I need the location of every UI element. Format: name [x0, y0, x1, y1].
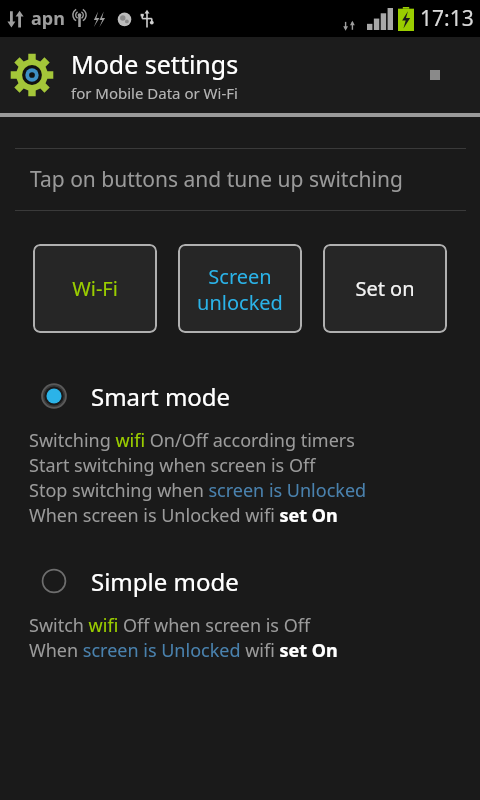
staticText: for Mobile Data or Wi-Fi: [71, 83, 238, 103]
staticText: Wi-Fi: [72, 275, 118, 302]
staticText: Smart mode: [91, 380, 231, 413]
staticText: 17:13: [420, 4, 474, 33]
staticText: Simple mode: [91, 565, 239, 598]
staticText: apn: [31, 6, 65, 31]
staticText: Set on: [355, 275, 415, 302]
staticText: Stop switching when screen is Unlocked: [29, 478, 367, 503]
button[interactable]: Simple mode: [0, 561, 480, 601]
staticText: Screen unlocked: [197, 263, 283, 315]
staticText: Switching wifi On/Off according timers: [29, 428, 355, 453]
button[interactable]: Set on: [323, 244, 447, 333]
staticText: When screen is Unlocked wifi set On: [29, 503, 338, 528]
button[interactable]: Screen unlocked: [178, 244, 302, 333]
button[interactable]: Smart mode: [0, 376, 480, 416]
staticText: Start switching when screen is Off: [29, 453, 316, 478]
staticText: Mode settings: [71, 47, 239, 81]
button[interactable]: Wi-Fi: [33, 244, 157, 333]
staticText: When screen is Unlocked wifi set On: [29, 638, 338, 663]
staticText: Tap on buttons and tune up switching: [30, 165, 403, 194]
staticText: Switch wifi Off when screen is Off: [29, 613, 311, 638]
button[interactable]: More options: [414, 54, 456, 96]
